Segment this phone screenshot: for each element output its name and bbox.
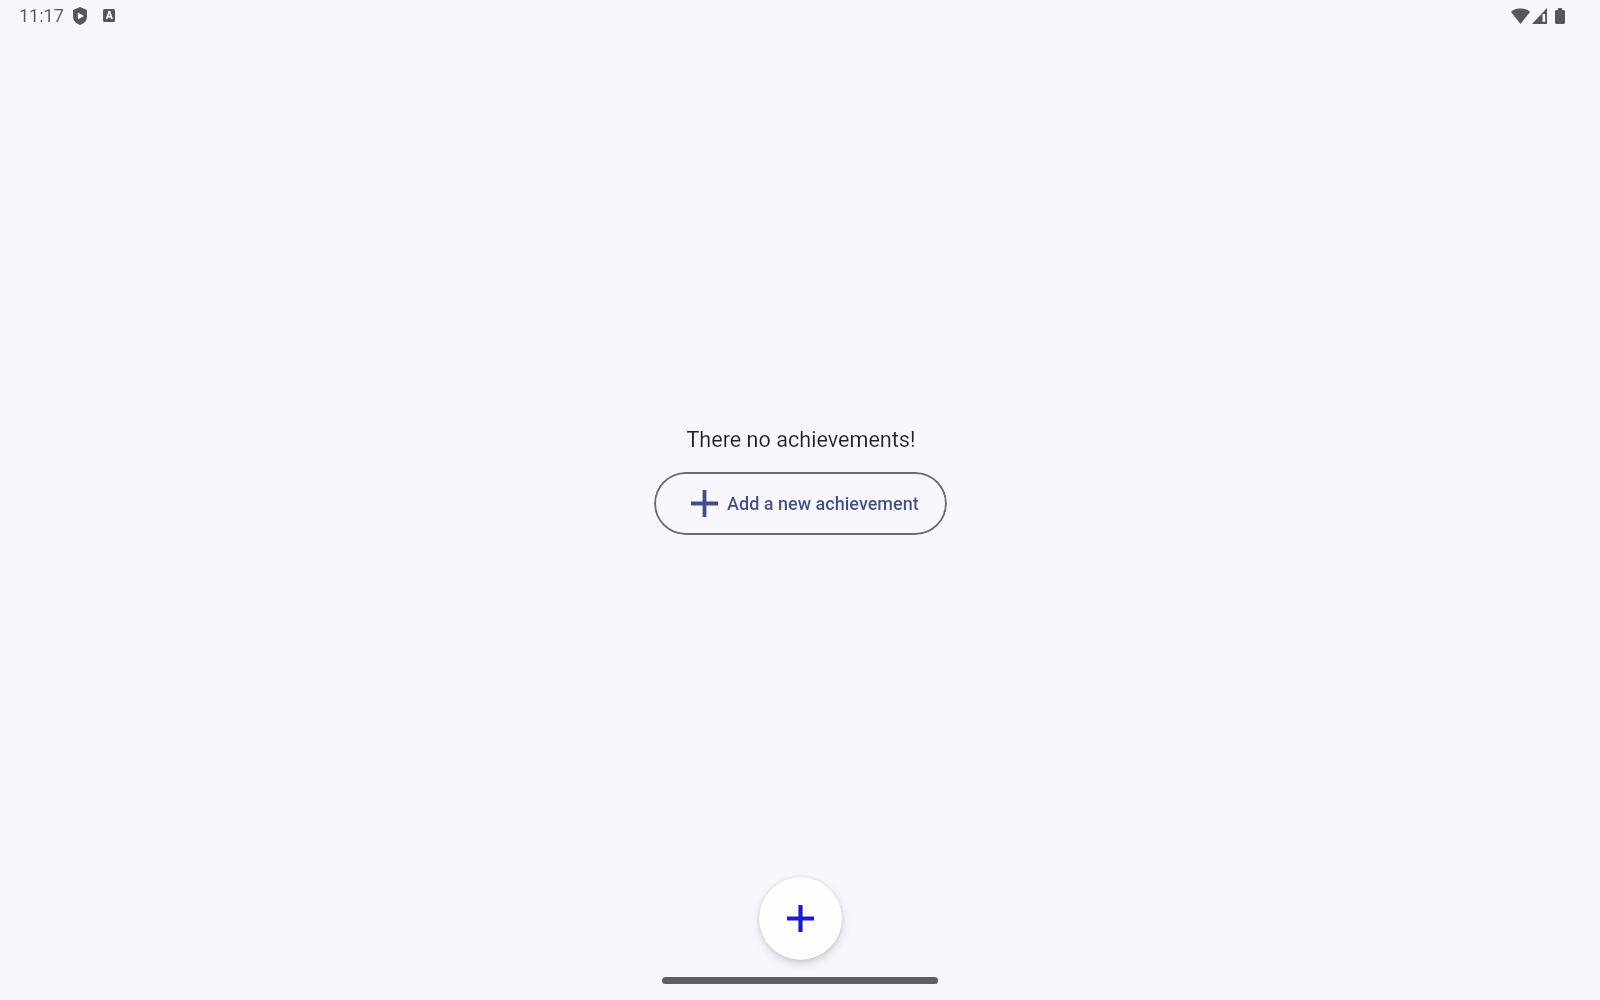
button[interactable]: Add a new achievement xyxy=(654,472,947,535)
staticText: There no achievements! xyxy=(686,427,916,452)
staticText: Add a new achievement xyxy=(727,493,919,514)
staticText: A xyxy=(106,10,113,22)
button[interactable]: Add a new achievement xyxy=(759,877,842,960)
staticText: 11:17 xyxy=(19,5,64,26)
